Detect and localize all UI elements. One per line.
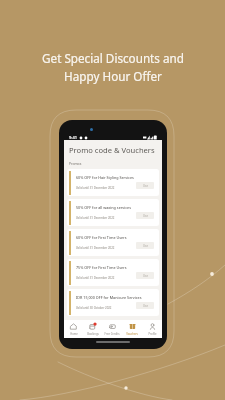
staticText: Valid until 31 December 2022 xyxy=(76,186,115,190)
button[interactable]: 60% OFF for First Time Users xyxy=(67,229,159,256)
staticText: Profile xyxy=(148,332,157,336)
staticText: Free Credits xyxy=(104,332,120,336)
staticText: Valid until 31 December 2022 xyxy=(76,216,115,220)
staticText: Valid until 30 October 2022 xyxy=(76,306,112,310)
staticText: 60% OFF for First Time Users xyxy=(76,235,127,240)
button[interactable]: Use xyxy=(136,302,154,309)
staticText: Happy Hour Offer xyxy=(64,68,162,84)
button[interactable]: Use xyxy=(136,182,154,189)
button[interactable]: Home xyxy=(64,320,83,338)
staticText: 60% OFF for Hair Styling Services xyxy=(76,175,134,180)
staticText: Promo code & Vouchers xyxy=(69,145,155,155)
staticText: IDR 15,000 OFF for Manicure Services xyxy=(76,295,142,300)
staticText: Valid until 31 December 2022 xyxy=(76,246,115,250)
staticText: Valid until 31 December 2022 xyxy=(76,276,115,280)
button[interactable]: 50% OFF for all waxing services xyxy=(67,199,159,226)
staticText: Promos xyxy=(69,161,82,166)
staticText: Use xyxy=(143,184,148,188)
button[interactable]: Use xyxy=(136,212,154,219)
button[interactable]: Use xyxy=(136,272,154,279)
button[interactable]: Use xyxy=(136,242,154,249)
button[interactable]: IDR 15,000 OFF for Manicure Services xyxy=(67,289,159,316)
button[interactable]: Vouchers xyxy=(122,320,142,338)
staticText: Bookings xyxy=(87,332,99,336)
staticText: Use xyxy=(143,214,148,218)
button[interactable]: Bookings xyxy=(83,320,102,338)
staticText: Vouchers xyxy=(126,332,138,336)
staticText: Use xyxy=(143,244,148,248)
button[interactable]: Free Credits xyxy=(102,320,122,338)
staticText: Use xyxy=(143,274,148,278)
button[interactable]: 75% OFF for First Time Users xyxy=(67,259,159,286)
staticText: Get Special Discounts and xyxy=(42,50,184,66)
staticText: 50% OFF for all waxing services xyxy=(76,205,131,210)
staticText: Use xyxy=(143,304,148,308)
staticText: Home xyxy=(70,332,78,336)
staticText: 9:41 xyxy=(69,135,77,140)
button[interactable]: 60% OFF for Hair Styling Services xyxy=(67,169,159,196)
staticText: 75% OFF for First Time Users xyxy=(76,265,127,270)
button[interactable]: Profile xyxy=(142,320,162,338)
